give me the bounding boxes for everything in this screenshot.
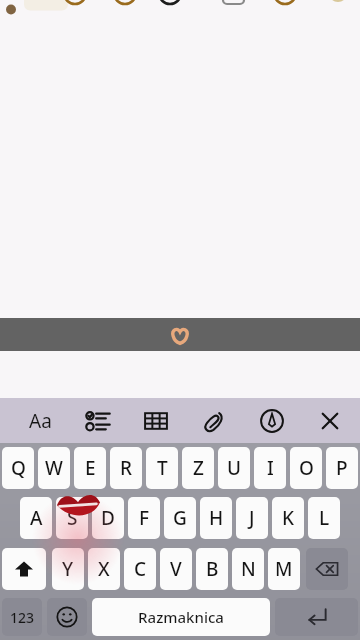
button[interactable]: X (88, 548, 120, 590)
button[interactable]: P (326, 447, 358, 489)
staticText: S (67, 505, 78, 531)
staticText: Razmaknica (138, 607, 224, 627)
button[interactable]: S (56, 497, 88, 539)
button[interactable]: A (20, 497, 52, 539)
button[interactable]: I (254, 447, 286, 489)
button[interactable]: O (290, 447, 322, 489)
staticText: P (336, 455, 348, 481)
button[interactable]: U (218, 447, 250, 489)
button[interactable]: T (146, 447, 178, 489)
button[interactable]: Shift (2, 548, 46, 590)
button[interactable]: 123 (2, 598, 42, 636)
staticText: D (101, 505, 115, 531)
button[interactable]: G (164, 497, 196, 539)
button[interactable]: Table (136, 401, 176, 441)
staticText: N (241, 556, 256, 582)
button[interactable]: F (128, 497, 160, 539)
button[interactable]: Checklist (78, 401, 118, 441)
button[interactable]: C (124, 548, 156, 590)
button[interactable]: Text format (20, 401, 60, 441)
staticText: F (139, 505, 150, 531)
button[interactable]: B (196, 548, 228, 590)
button[interactable]: M (268, 548, 300, 590)
button[interactable]: J (236, 497, 268, 539)
button[interactable]: Enter (275, 598, 358, 636)
button[interactable]: Attach (194, 401, 234, 441)
staticText: E (85, 455, 96, 481)
staticText: H (209, 505, 224, 531)
staticText: Q (11, 455, 26, 481)
staticText: I (267, 455, 274, 481)
button[interactable]: N (232, 548, 264, 590)
staticText: J (249, 505, 255, 531)
staticText: K (282, 505, 295, 531)
button[interactable]: Draw (252, 401, 292, 441)
staticText: Y (62, 556, 74, 582)
staticText: W (45, 455, 63, 481)
button[interactable]: Backspace (306, 548, 348, 590)
button[interactable]: Emoji (47, 598, 87, 636)
button[interactable]: R (110, 447, 142, 489)
staticText: V (170, 556, 182, 582)
staticText: L (319, 505, 330, 531)
staticText: C (134, 556, 147, 582)
button[interactable]: H (200, 497, 232, 539)
staticText: R (120, 455, 133, 481)
staticText: A (30, 505, 43, 531)
button[interactable]: W (38, 447, 70, 489)
button[interactable]: Y (52, 548, 84, 590)
staticText: Aa (29, 408, 52, 434)
button[interactable]: L (308, 497, 340, 539)
button[interactable]: Q (2, 447, 34, 489)
button[interactable]: Razmaknica (92, 598, 270, 636)
button[interactable]: V (160, 548, 192, 590)
button[interactable]: D (92, 497, 124, 539)
staticText: U (227, 455, 242, 481)
button[interactable]: E (74, 447, 106, 489)
button[interactable]: Z (182, 447, 214, 489)
staticText: M (275, 556, 293, 582)
staticText: O (299, 455, 314, 481)
staticText: 123 (10, 608, 35, 627)
staticText: Z (193, 455, 204, 481)
staticText: X (98, 556, 110, 582)
button[interactable]: K (272, 497, 304, 539)
staticText: B (206, 556, 219, 582)
staticText: G (173, 505, 187, 531)
staticText: T (157, 455, 168, 481)
button[interactable]: Close (310, 401, 350, 441)
